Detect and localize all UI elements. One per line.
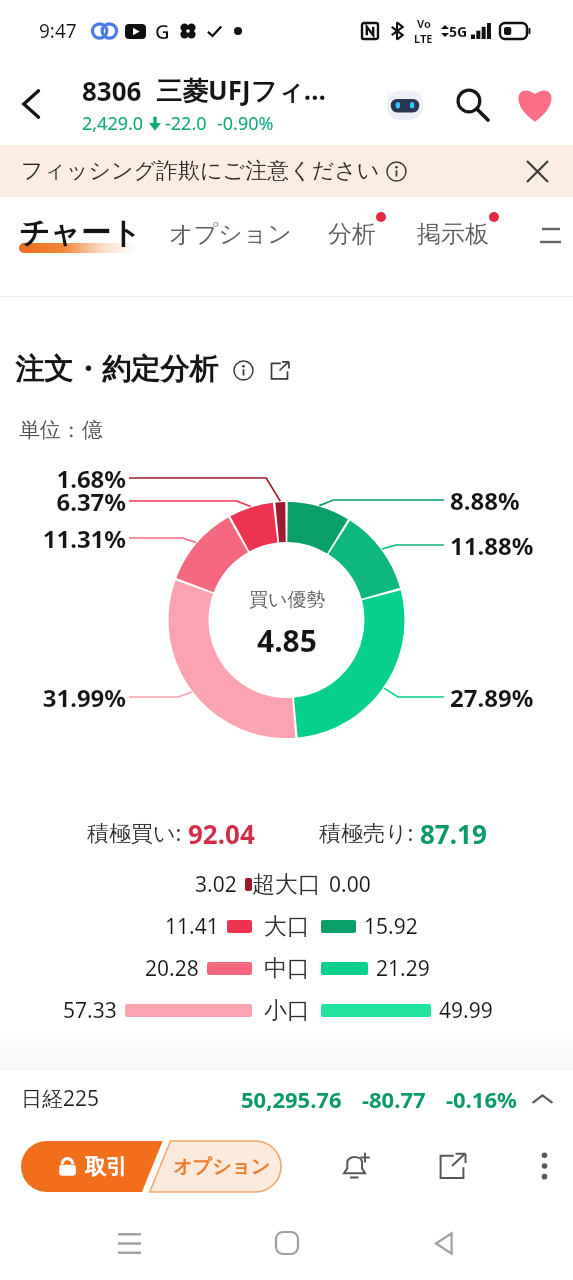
button[interactable]: 取引 [21,1141,163,1192]
staticText: 27.89% [450,681,534,714]
staticText: 11.41 [165,912,219,941]
staticText: オプション [169,219,292,249]
button[interactable]: Search [444,76,500,132]
button[interactable]: 分析 [320,215,394,253]
staticText: 取引 [85,1154,127,1180]
staticText: チャート [19,214,142,252]
button[interactable]: オプション [161,215,300,253]
staticText: 3.02 [195,870,237,899]
staticText: Vo [417,16,431,31]
staticText: G [155,18,170,45]
button[interactable]: Close [515,149,559,193]
staticText: 92.04 [188,816,255,848]
staticText: 20.28 [145,954,199,983]
staticText: 4.85 [257,620,317,661]
staticText: 9:47 [39,18,77,44]
button[interactable]: Share [265,356,293,384]
button[interactable]: Home [259,1215,315,1271]
staticText: 5G [449,22,468,41]
staticText: 超大口 [252,870,321,899]
staticText: 注文・約定分析 [15,351,218,388]
staticText: 0.00 [329,870,371,899]
button[interactable]: Expand [527,1084,557,1114]
staticText: 8.88% [450,484,520,517]
staticText: 小口 [264,996,310,1025]
staticText: 8306 [82,73,142,108]
staticText: 買い優勢 [249,588,326,612]
staticText: 21.29 [376,954,430,983]
button[interactable]: Share [426,1140,478,1192]
staticText: 2,429.0 [82,111,144,136]
button[interactable]: Add alert [330,1140,382,1192]
button[interactable]: オプション [163,1141,281,1192]
staticText: 積極買い: [87,817,188,847]
staticText: 積極売り: [319,817,420,847]
staticText: 87.19 [420,816,487,848]
staticText: 大口 [264,912,310,941]
staticText: 日経225 [21,1084,100,1113]
staticText: 11.31% [42,522,126,555]
staticText: -22.0 [165,111,207,136]
staticText: 中口 [264,954,310,983]
staticText: -80.77 [362,1084,426,1114]
staticText: 31.99% [42,681,126,714]
button[interactable]: チャート [11,210,150,256]
staticText: LTE [414,31,433,46]
staticText: 6.37% [56,485,126,518]
staticText: 掲示板 [417,219,489,249]
staticText: フィッシング詐欺にご注意ください [21,157,380,185]
staticText: オプション [173,1155,271,1179]
staticText: 49.99 [439,996,493,1025]
button[interactable]: AI assistant [377,76,433,132]
staticText: 57.33 [63,996,117,1025]
staticText: -0.90% [217,111,274,136]
button[interactable]: Recents [101,1215,157,1271]
staticText: 分析 [328,219,376,249]
button[interactable]: More options [522,1144,566,1188]
staticText: -0.16% [446,1084,517,1114]
button[interactable]: More tabs [533,212,573,256]
staticText: 三菱UFJフィ… [156,72,326,108]
staticText: 15.92 [364,912,418,941]
button[interactable]: Back [416,1215,472,1271]
button[interactable]: Info [229,356,257,384]
staticText: 11.88% [450,529,534,562]
staticText: 単位：億 [19,417,103,443]
button[interactable]: Back [7,80,55,128]
staticText: 1.68% [56,462,126,495]
button[interactable]: 掲示板 [409,215,507,253]
staticText: 50,295.76 [241,1084,342,1114]
button[interactable]: Favorite [507,76,563,132]
